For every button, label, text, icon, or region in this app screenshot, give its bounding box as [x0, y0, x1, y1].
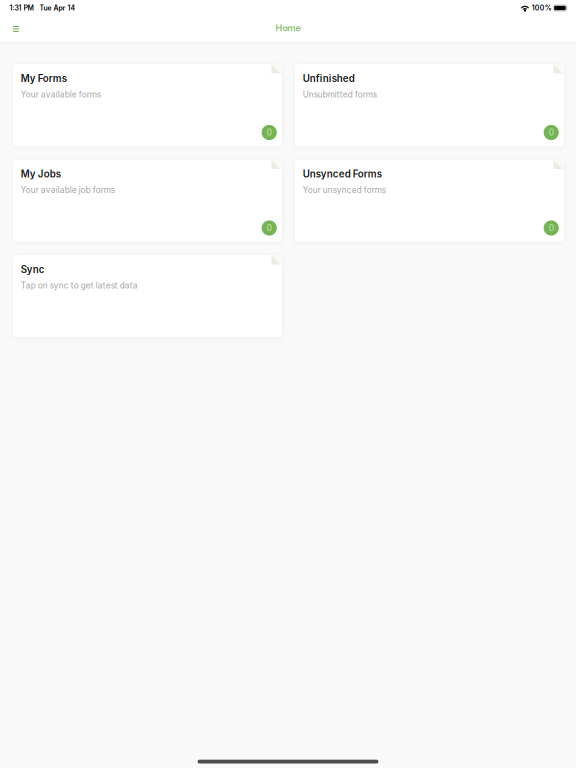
staticText: 0: [549, 223, 554, 233]
staticText: 100%: [532, 4, 552, 12]
button[interactable]: My Jobs: [13, 160, 282, 242]
staticText: Unfinished: [303, 73, 355, 84]
staticText: 0: [549, 127, 554, 137]
staticText: Unsubmitted forms: [303, 89, 377, 99]
staticText: Your available job forms: [21, 185, 115, 195]
button[interactable]: Menu: [0, 17, 31, 41]
button[interactable]: Sync: [13, 255, 282, 337]
button[interactable]: My Forms: [13, 64, 282, 146]
staticText: Your available forms: [21, 89, 101, 99]
staticText: My Jobs: [21, 168, 61, 180]
staticText: 1:31 PM: [9, 4, 33, 12]
staticText: Tap on sync to get latest data: [21, 280, 138, 290]
staticText: Home: [275, 22, 300, 33]
staticText: Sync: [21, 264, 45, 275]
staticText: 0: [267, 223, 272, 233]
staticText: Your unsynced forms: [303, 185, 386, 195]
staticText: Tue Apr 14: [39, 4, 75, 12]
staticText: Unsynced Forms: [303, 168, 382, 180]
staticText: My Forms: [21, 73, 67, 84]
button[interactable]: Unsynced Forms: [295, 160, 564, 242]
staticText: 0: [267, 127, 272, 137]
button[interactable]: Unfinished: [295, 64, 564, 146]
